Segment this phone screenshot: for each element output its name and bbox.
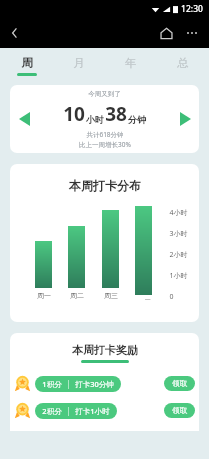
staticText: 2小时 <box>169 250 188 260</box>
other: Medal <box>14 402 31 419</box>
staticText: 2积分 <box>42 406 62 416</box>
staticText: 1积分 <box>42 379 62 389</box>
button[interactable]: Next week <box>174 108 196 130</box>
staticText: 周二 <box>70 291 84 300</box>
staticText: 4小时 <box>169 208 188 218</box>
staticText: 打卡30分钟 <box>75 379 114 389</box>
staticText: 月 <box>73 56 85 70</box>
staticText: 总 <box>177 56 189 70</box>
button[interactable]: 年 <box>105 53 157 79</box>
button[interactable]: Previous week <box>13 108 35 130</box>
staticText: 领取 <box>172 379 187 388</box>
other: Medal <box>14 375 31 392</box>
button[interactable]: Medal <box>14 375 195 392</box>
staticText: 周 <box>21 56 33 70</box>
staticText: 1小时 <box>169 271 188 281</box>
button[interactable]: 领取 <box>164 403 195 418</box>
staticText: 今周又到了 <box>88 90 121 98</box>
button[interactable]: 总 <box>157 53 209 79</box>
staticText: 0 <box>169 292 174 300</box>
staticText: 本周打卡奖励 <box>72 343 138 357</box>
button[interactable]: 周 <box>0 53 53 79</box>
staticText: 共计618分钟 <box>86 130 124 139</box>
button[interactable]: 领取 <box>164 376 195 391</box>
staticText: 小时 <box>86 114 104 125</box>
staticText: 周四 <box>137 298 151 300</box>
staticText: 3小时 <box>169 229 188 239</box>
staticText: 打卡1小时 <box>75 406 110 416</box>
staticText: 分钟 <box>128 114 146 125</box>
staticText: 周一 <box>37 291 51 300</box>
staticText: 年 <box>125 56 137 70</box>
button[interactable]: Back <box>4 22 26 44</box>
staticText: 周三 <box>104 291 118 300</box>
staticText: 领取 <box>172 406 187 415</box>
staticText: 12:30 <box>181 3 203 15</box>
staticText: 本周打卡分布 <box>69 178 141 193</box>
button[interactable]: Medal <box>14 402 195 419</box>
staticText: 10 <box>63 101 85 127</box>
button[interactable]: More options <box>181 22 203 44</box>
button[interactable]: Home <box>155 22 177 44</box>
staticText: 38 <box>105 101 127 127</box>
staticText: 比上一周增长30% <box>79 140 131 149</box>
button[interactable]: 月 <box>53 53 105 79</box>
